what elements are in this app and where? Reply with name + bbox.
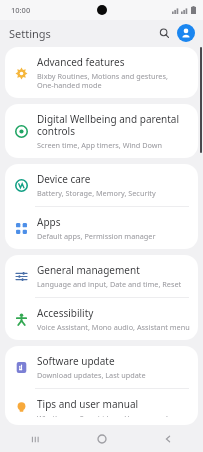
button[interactable]: Software update: [5, 346, 198, 388]
staticText: Default apps, Permission manager: [37, 231, 156, 241]
staticText: Settings: [9, 26, 51, 41]
staticText: Screen time, App timers, Wind Down: [37, 140, 163, 150]
button[interactable]: Tips and user manual: [5, 389, 198, 425]
staticText: General management: [37, 263, 140, 277]
button[interactable]: Accessibility: [5, 298, 198, 340]
button[interactable]: Device care: [5, 164, 198, 206]
staticText: Tips and user manual: [37, 397, 139, 411]
button[interactable]: General management: [5, 255, 198, 297]
button[interactable]: Home: [89, 426, 115, 452]
staticText: Accessibility: [37, 306, 94, 320]
staticText: 10:00: [11, 5, 31, 15]
staticText: Software update: [37, 354, 115, 368]
staticText: Battery, Storage, Memory, Security: [37, 188, 156, 198]
staticText: What's new, Smart ideas, User manual: [37, 413, 168, 417]
staticText: Apps: [37, 215, 61, 229]
staticText: Digital Wellbeing and parental controls: [37, 112, 180, 138]
staticText: Advanced features: [37, 55, 125, 69]
button[interactable]: Account: [177, 24, 195, 42]
staticText: Bixby Routines, Motions and gestures, On…: [37, 71, 168, 90]
button[interactable]: Search: [155, 24, 173, 42]
button[interactable]: Back: [155, 426, 181, 452]
button[interactable]: Apps: [5, 207, 198, 249]
staticText: Language and input, Date and time, Reset: [37, 279, 182, 289]
button[interactable]: Recents: [22, 426, 48, 452]
staticText: Voice Assistant, Mono audio, Assistant m…: [37, 322, 190, 332]
staticText: Download updates, Last update: [37, 370, 146, 380]
button[interactable]: Advanced features: [5, 47, 198, 98]
staticText: Device care: [37, 172, 91, 186]
button[interactable]: Digital Wellbeing and parental controls: [5, 104, 198, 158]
